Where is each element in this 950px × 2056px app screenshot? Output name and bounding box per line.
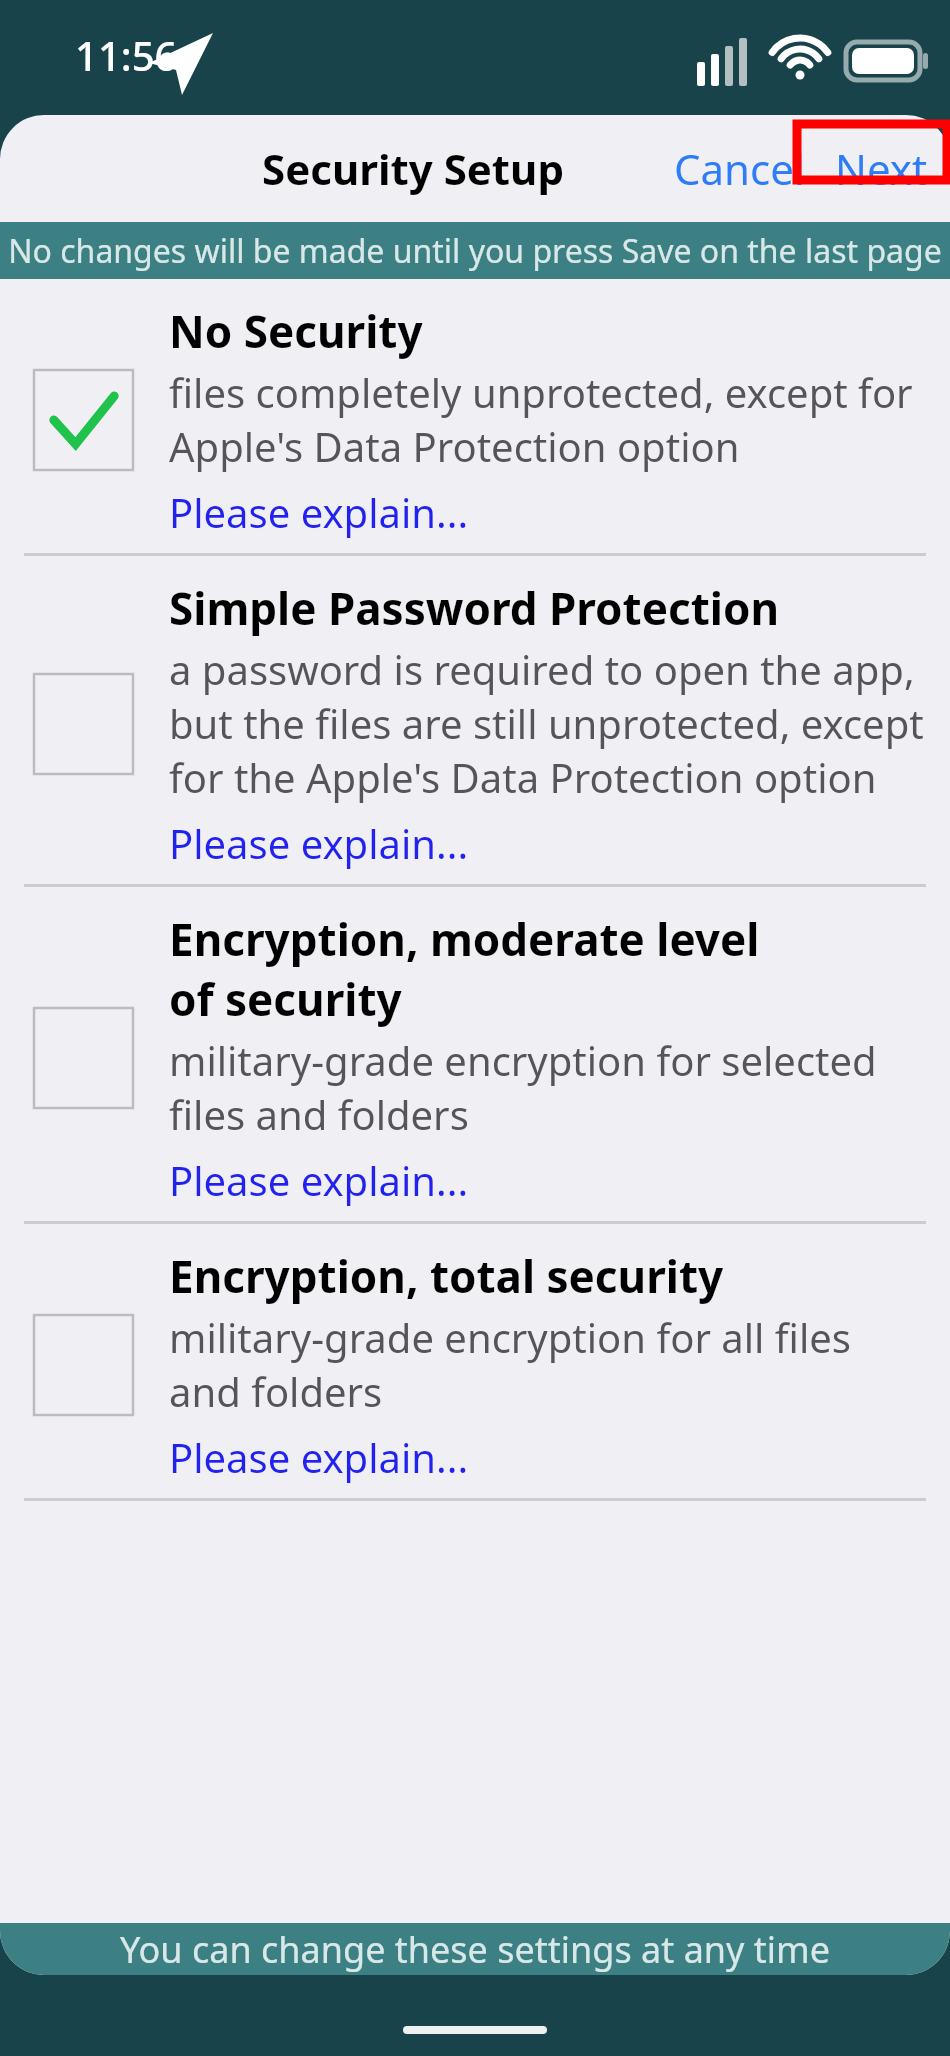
button[interactable]: Please explain... [169, 1153, 469, 1207]
button[interactable]: Simple Password Protection [0, 556, 950, 884]
staticText: Simple Password Protection [169, 578, 780, 638]
button[interactable]: Cancel [670, 130, 809, 207]
staticText: Cancel [674, 140, 805, 197]
staticText: Apple's Data Protection option [169, 419, 740, 473]
button[interactable]: Please explain... [169, 1430, 469, 1484]
staticText: Encryption, moderate level [169, 909, 760, 969]
staticText: files and folders [169, 1087, 469, 1141]
staticText: Please explain... [169, 816, 469, 870]
staticText: Please explain... [169, 485, 469, 539]
staticText: Please explain... [169, 1430, 469, 1484]
staticText: Encryption, total security [169, 1246, 724, 1306]
staticText: No Security [169, 301, 423, 361]
button[interactable]: Encryption, total security [0, 1224, 950, 1498]
staticText: of security [169, 969, 402, 1029]
staticText: and folders [169, 1364, 383, 1418]
staticText: military-grade encryption for selected [169, 1033, 877, 1087]
button[interactable]: No Security [0, 279, 950, 553]
staticText: 11:56 [75, 28, 178, 82]
staticText: a password is required to open the app, [169, 642, 915, 696]
button[interactable]: Encryption, moderate level [0, 887, 950, 1221]
staticText: Please explain... [169, 1153, 469, 1207]
staticText: files completely unprotected, except for [169, 365, 913, 419]
staticText: Security Setup [262, 140, 564, 197]
staticText: but the files are still unprotected, exc… [169, 696, 924, 750]
staticText: Next [835, 140, 928, 197]
button[interactable]: Please explain... [169, 485, 469, 539]
staticText: You can change these settings at any tim… [120, 1925, 831, 1974]
staticText: military-grade encryption for all files [169, 1310, 851, 1364]
button[interactable]: Please explain... [169, 816, 469, 870]
button[interactable]: Next [809, 130, 950, 207]
staticText: for the Apple's Data Protection option [169, 750, 877, 804]
staticText: No changes will be made until you press … [8, 229, 942, 273]
